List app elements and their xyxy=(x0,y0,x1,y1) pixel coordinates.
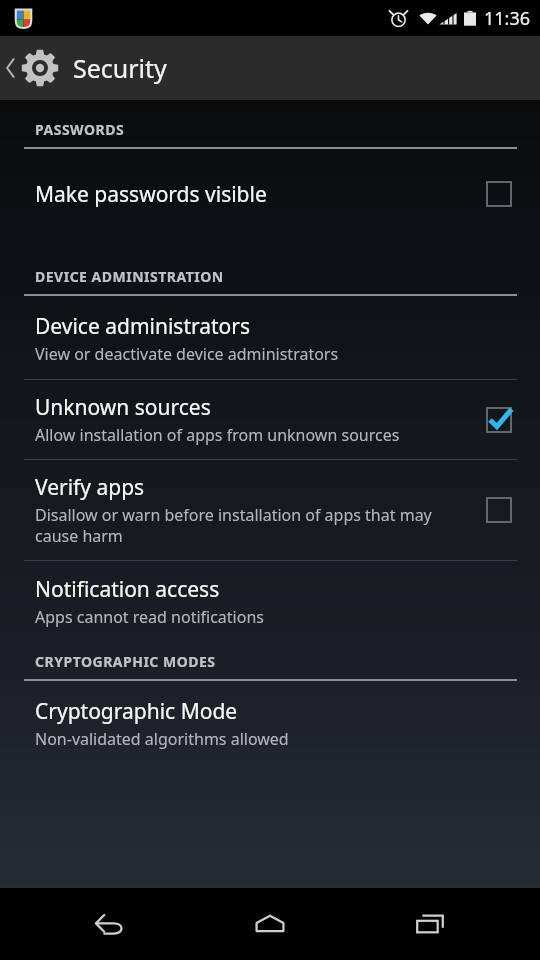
button[interactable]: Unchecked xyxy=(476,171,522,217)
button[interactable]: Back xyxy=(60,888,160,960)
staticText: Security xyxy=(73,51,167,85)
button[interactable]: Verify apps xyxy=(0,460,540,560)
button[interactable]: Unknown sources xyxy=(0,380,540,459)
button[interactable]: Navigate up xyxy=(0,36,540,100)
staticText: Non-validated algorithms allowed xyxy=(35,728,289,750)
button[interactable]: Recent apps xyxy=(380,888,480,960)
staticText: Apps cannot read notifications xyxy=(35,606,264,628)
staticText: View or deactivate device administrators xyxy=(35,343,339,365)
button[interactable]: Device administrators xyxy=(0,296,540,379)
button[interactable]: Cryptographic Mode xyxy=(0,681,540,764)
button[interactable]: Unchecked xyxy=(476,487,522,533)
staticText: Notification access xyxy=(35,575,220,604)
staticText: Device administrators xyxy=(35,312,251,341)
staticText: Make passwords visible xyxy=(35,180,267,209)
staticText: Allow installation of apps from unknown … xyxy=(35,424,400,446)
staticText: Disallow or warn before installation of … xyxy=(35,504,466,547)
button[interactable]: Notification access xyxy=(0,561,540,638)
button[interactable]: Checked xyxy=(476,397,522,443)
staticText: PASSWORDS xyxy=(35,120,125,139)
staticText: DEVICE ADMINISTRATION xyxy=(35,267,224,286)
staticText: Cryptographic Mode xyxy=(35,697,238,726)
staticText: 11:36 xyxy=(484,6,531,31)
button[interactable]: Home xyxy=(220,888,320,960)
staticText: Unknown sources xyxy=(35,393,211,422)
staticText: Verify apps xyxy=(35,473,145,502)
staticText: CRYPTOGRAPHIC MODES xyxy=(35,652,216,671)
button[interactable]: Make passwords visible xyxy=(0,149,540,241)
